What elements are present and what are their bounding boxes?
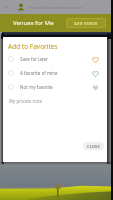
staticText: CLOSE bbox=[87, 144, 100, 149]
button[interactable]: A favorite of mine bbox=[3, 66, 107, 80]
staticText: Add to Favorites bbox=[8, 42, 58, 51]
staticText: Not my favorite bbox=[20, 84, 53, 90]
button[interactable]: Back bbox=[3, 4, 9, 10]
button[interactable]: Account bbox=[17, 3, 25, 11]
button[interactable]: Not my favorite bbox=[3, 80, 107, 94]
staticText: My private note bbox=[9, 98, 43, 104]
staticText: ADD VENUE bbox=[74, 21, 98, 26]
button[interactable]: Save for later bbox=[3, 52, 107, 66]
button[interactable]: CLOSE bbox=[83, 142, 104, 150]
staticText: Venues for Me bbox=[13, 19, 54, 27]
staticText: Save for later bbox=[20, 56, 48, 62]
staticText: https://venuesfor.me/venues bbox=[29, 5, 83, 10]
button[interactable]: ADD VENUE bbox=[66, 18, 106, 28]
staticText: A favorite of mine bbox=[20, 70, 58, 76]
